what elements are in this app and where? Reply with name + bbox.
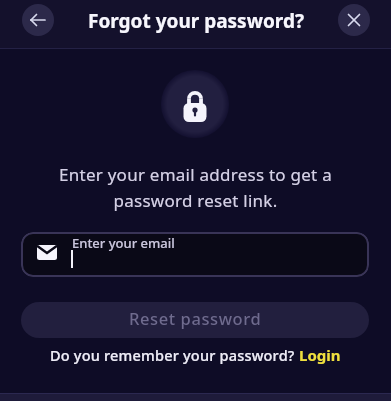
button[interactable]: Reset password [21,302,369,338]
staticText: Forgot your password? [88,8,304,34]
staticText: Enter your email address to get a passwo… [0,163,391,212]
staticText: Enter your email [72,234,175,252]
staticText: Do you remember your password? [50,345,299,365]
staticText: Reset password [129,307,262,329]
button[interactable]: Login [299,345,341,365]
button[interactable] [22,4,54,36]
button[interactable] [338,4,370,36]
button[interactable]: Enter your email [21,232,369,277]
